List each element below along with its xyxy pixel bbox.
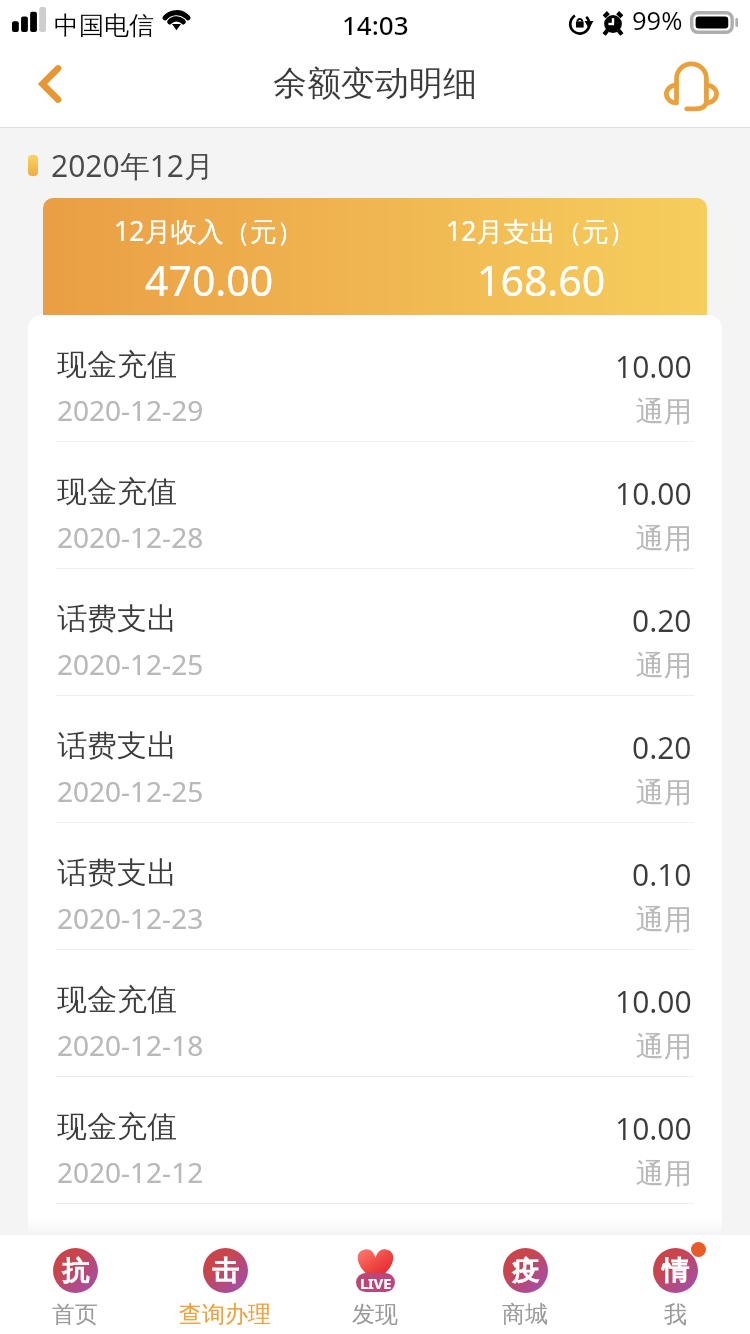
- staticText: 发现: [352, 1300, 398, 1329]
- staticText: 10.00: [615, 1108, 692, 1149]
- button[interactable]: 抗: [0, 1235, 150, 1334]
- button[interactable]: Customer service: [658, 44, 750, 128]
- staticText: 10.00: [615, 473, 692, 514]
- staticText: 查询办理: [179, 1300, 271, 1329]
- staticText: 通用: [636, 1156, 692, 1191]
- staticText: 0.20: [632, 727, 692, 768]
- staticText: 抗: [62, 1254, 89, 1288]
- staticText: 通用: [636, 775, 692, 810]
- staticText: 通用: [636, 1029, 692, 1064]
- button[interactable]: 疫: [450, 1235, 600, 1334]
- staticText: 2020年12月: [51, 145, 214, 186]
- staticText: 14:03: [342, 7, 409, 42]
- staticText: 0.10: [632, 854, 692, 895]
- staticText: 168.60: [477, 252, 606, 308]
- staticText: 2020-12-12: [57, 1153, 204, 1191]
- staticText: 疫: [512, 1254, 539, 1288]
- button[interactable]: LIVE: [300, 1235, 450, 1334]
- staticText: 余额变动明细: [273, 62, 477, 105]
- staticText: 12月收入（元）: [114, 213, 304, 249]
- staticText: 通用: [636, 521, 692, 556]
- staticText: 2020-12-29: [57, 391, 204, 429]
- staticText: 首页: [52, 1300, 98, 1329]
- staticText: 击: [212, 1254, 239, 1288]
- staticText: 10.00: [615, 346, 692, 387]
- staticText: 中国电信: [54, 10, 154, 41]
- staticText: 2020-12-28: [57, 518, 204, 556]
- button[interactable]: 现金充值: [28, 315, 722, 442]
- staticText: 话费支出: [57, 727, 177, 765]
- button[interactable]: 话费支出: [28, 569, 722, 696]
- staticText: 通用: [636, 902, 692, 937]
- staticText: 我: [664, 1300, 687, 1329]
- staticText: 现金充值: [57, 981, 177, 1019]
- staticText: 通用: [636, 648, 692, 683]
- button[interactable]: 现金充值: [28, 1077, 722, 1204]
- staticText: 现金充值: [57, 473, 177, 511]
- staticText: 2020-12-23: [57, 899, 204, 937]
- staticText: 2020-12-18: [57, 1026, 204, 1064]
- staticText: 话费支出: [57, 854, 177, 892]
- staticText: 2020-12-25: [57, 772, 204, 810]
- staticText: 2020-12-25: [57, 645, 204, 683]
- staticText: 0.20: [632, 600, 692, 641]
- button[interactable]: 现金充值: [28, 950, 722, 1077]
- staticText: 12月支出（元）: [446, 213, 636, 249]
- staticText: 现金充值: [57, 1108, 177, 1146]
- staticText: 情: [662, 1254, 689, 1288]
- staticText: 话费支出: [57, 600, 177, 638]
- staticText: 通用: [636, 394, 692, 429]
- button[interactable]: 现金充值: [28, 442, 722, 569]
- button[interactable]: 话费支出: [28, 823, 722, 950]
- button[interactable]: 话费支出: [28, 696, 722, 823]
- staticText: 现金充值: [57, 346, 177, 384]
- staticText: 470.00: [145, 252, 274, 308]
- staticText: 99%: [632, 3, 683, 38]
- staticText: 商城: [502, 1300, 548, 1329]
- button[interactable]: Back: [0, 44, 92, 128]
- button[interactable]: 击: [150, 1235, 300, 1334]
- staticText: 10.00: [615, 981, 692, 1022]
- button[interactable]: 情: [600, 1235, 750, 1334]
- staticText: LIVE: [360, 1273, 392, 1292]
